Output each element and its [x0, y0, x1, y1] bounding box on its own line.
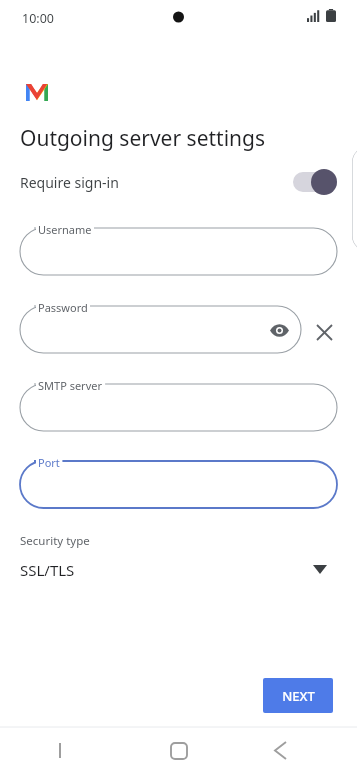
- button[interactable]: Security type: [0, 528, 357, 590]
- staticText: Port: [38, 455, 60, 470]
- button[interactable]: Show password: [265, 316, 293, 344]
- button[interactable]: Require sign-in toggle: [293, 169, 337, 195]
- button[interactable]: Port: [20, 461, 337, 508]
- staticText: NEXT: [282, 687, 315, 705]
- button[interactable]: Home: [155, 727, 203, 774]
- button[interactable]: Require sign-in: [0, 162, 357, 202]
- staticText: SMTP server: [38, 378, 102, 393]
- button[interactable]: Password: [20, 306, 301, 353]
- staticText: SSL/TLS: [20, 560, 75, 580]
- staticText: Require sign-in: [20, 173, 119, 192]
- staticText: Outgoing server settings: [20, 124, 266, 153]
- staticText: Username: [38, 222, 92, 237]
- staticText: Security type: [20, 533, 90, 549]
- staticText: 10:00: [22, 10, 54, 27]
- button[interactable]: NEXT: [263, 678, 333, 713]
- button[interactable]: Clear password: [310, 318, 338, 346]
- button[interactable]: SMTP server: [20, 384, 337, 431]
- staticText: Password: [38, 300, 88, 315]
- button[interactable]: Back: [256, 727, 304, 774]
- button[interactable]: Username: [20, 228, 337, 275]
